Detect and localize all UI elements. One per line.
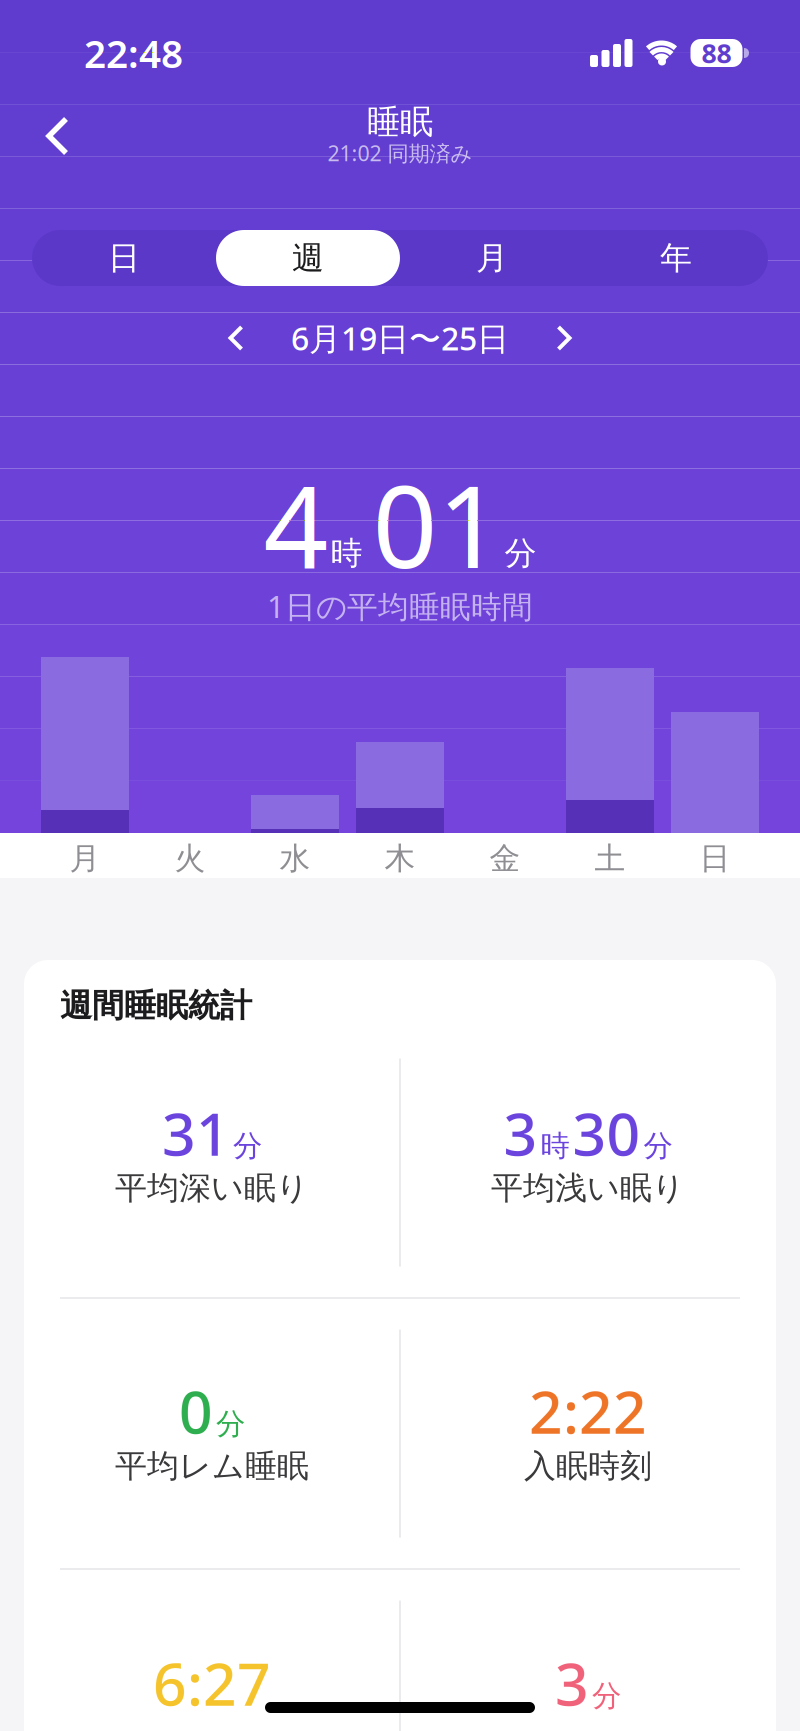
staticText: 分 [592, 1678, 621, 1714]
staticText: 3 [555, 1644, 589, 1722]
staticText: 21:02 同期済み [327, 139, 472, 167]
staticText: 土 [594, 840, 625, 877]
staticText: 0 [179, 1372, 213, 1450]
staticText: 30 [572, 1094, 640, 1172]
button[interactable]: 日 [32, 230, 216, 286]
staticText: 火 [174, 840, 205, 877]
staticText: 平均レム睡眠 [115, 1446, 309, 1486]
staticText: 時 [330, 534, 362, 573]
staticText: 月 [69, 840, 100, 877]
staticText: 日 [699, 840, 730, 877]
staticText: 分 [504, 534, 536, 573]
staticText: 6月19日〜25日 [291, 317, 509, 359]
staticText: 週間睡眠統計 [60, 986, 252, 1025]
staticText: 1日の平均睡眠時間 [267, 586, 533, 626]
staticText: 3 [503, 1094, 537, 1172]
staticText: 6:27 [153, 1644, 271, 1722]
button[interactable]: 月 [400, 230, 584, 286]
staticText: 31 [162, 1094, 230, 1172]
staticText: 月 [476, 238, 508, 278]
staticText: 日 [108, 238, 140, 278]
button[interactable]: 年 [584, 230, 768, 286]
staticText: 平均浅い眠り [491, 1168, 685, 1208]
staticText: 入眠時刻 [524, 1446, 652, 1486]
staticText: 2:22 [529, 1372, 647, 1450]
staticText: 分 [643, 1128, 672, 1164]
staticText: 水 [279, 840, 310, 877]
staticText: 週 [292, 238, 324, 278]
staticText: 木 [384, 840, 415, 877]
staticText: 年 [660, 238, 692, 278]
staticText: 01 [372, 449, 502, 599]
staticText: 22:48 [84, 27, 183, 79]
staticText: 分 [216, 1406, 245, 1442]
button[interactable]: 週 [216, 230, 400, 286]
button[interactable]: 戻る [30, 111, 86, 161]
staticText: 4 [263, 449, 328, 599]
button[interactable]: 前の週 [221, 320, 251, 356]
staticText: 88 [701, 35, 731, 71]
staticText: 平均深い眠り [115, 1168, 309, 1208]
button[interactable]: 次の週 [549, 320, 579, 356]
staticText: 睡眠 [367, 101, 433, 142]
staticText: 金 [489, 840, 520, 877]
staticText: 時 [540, 1128, 569, 1164]
staticText: 分 [233, 1128, 262, 1164]
